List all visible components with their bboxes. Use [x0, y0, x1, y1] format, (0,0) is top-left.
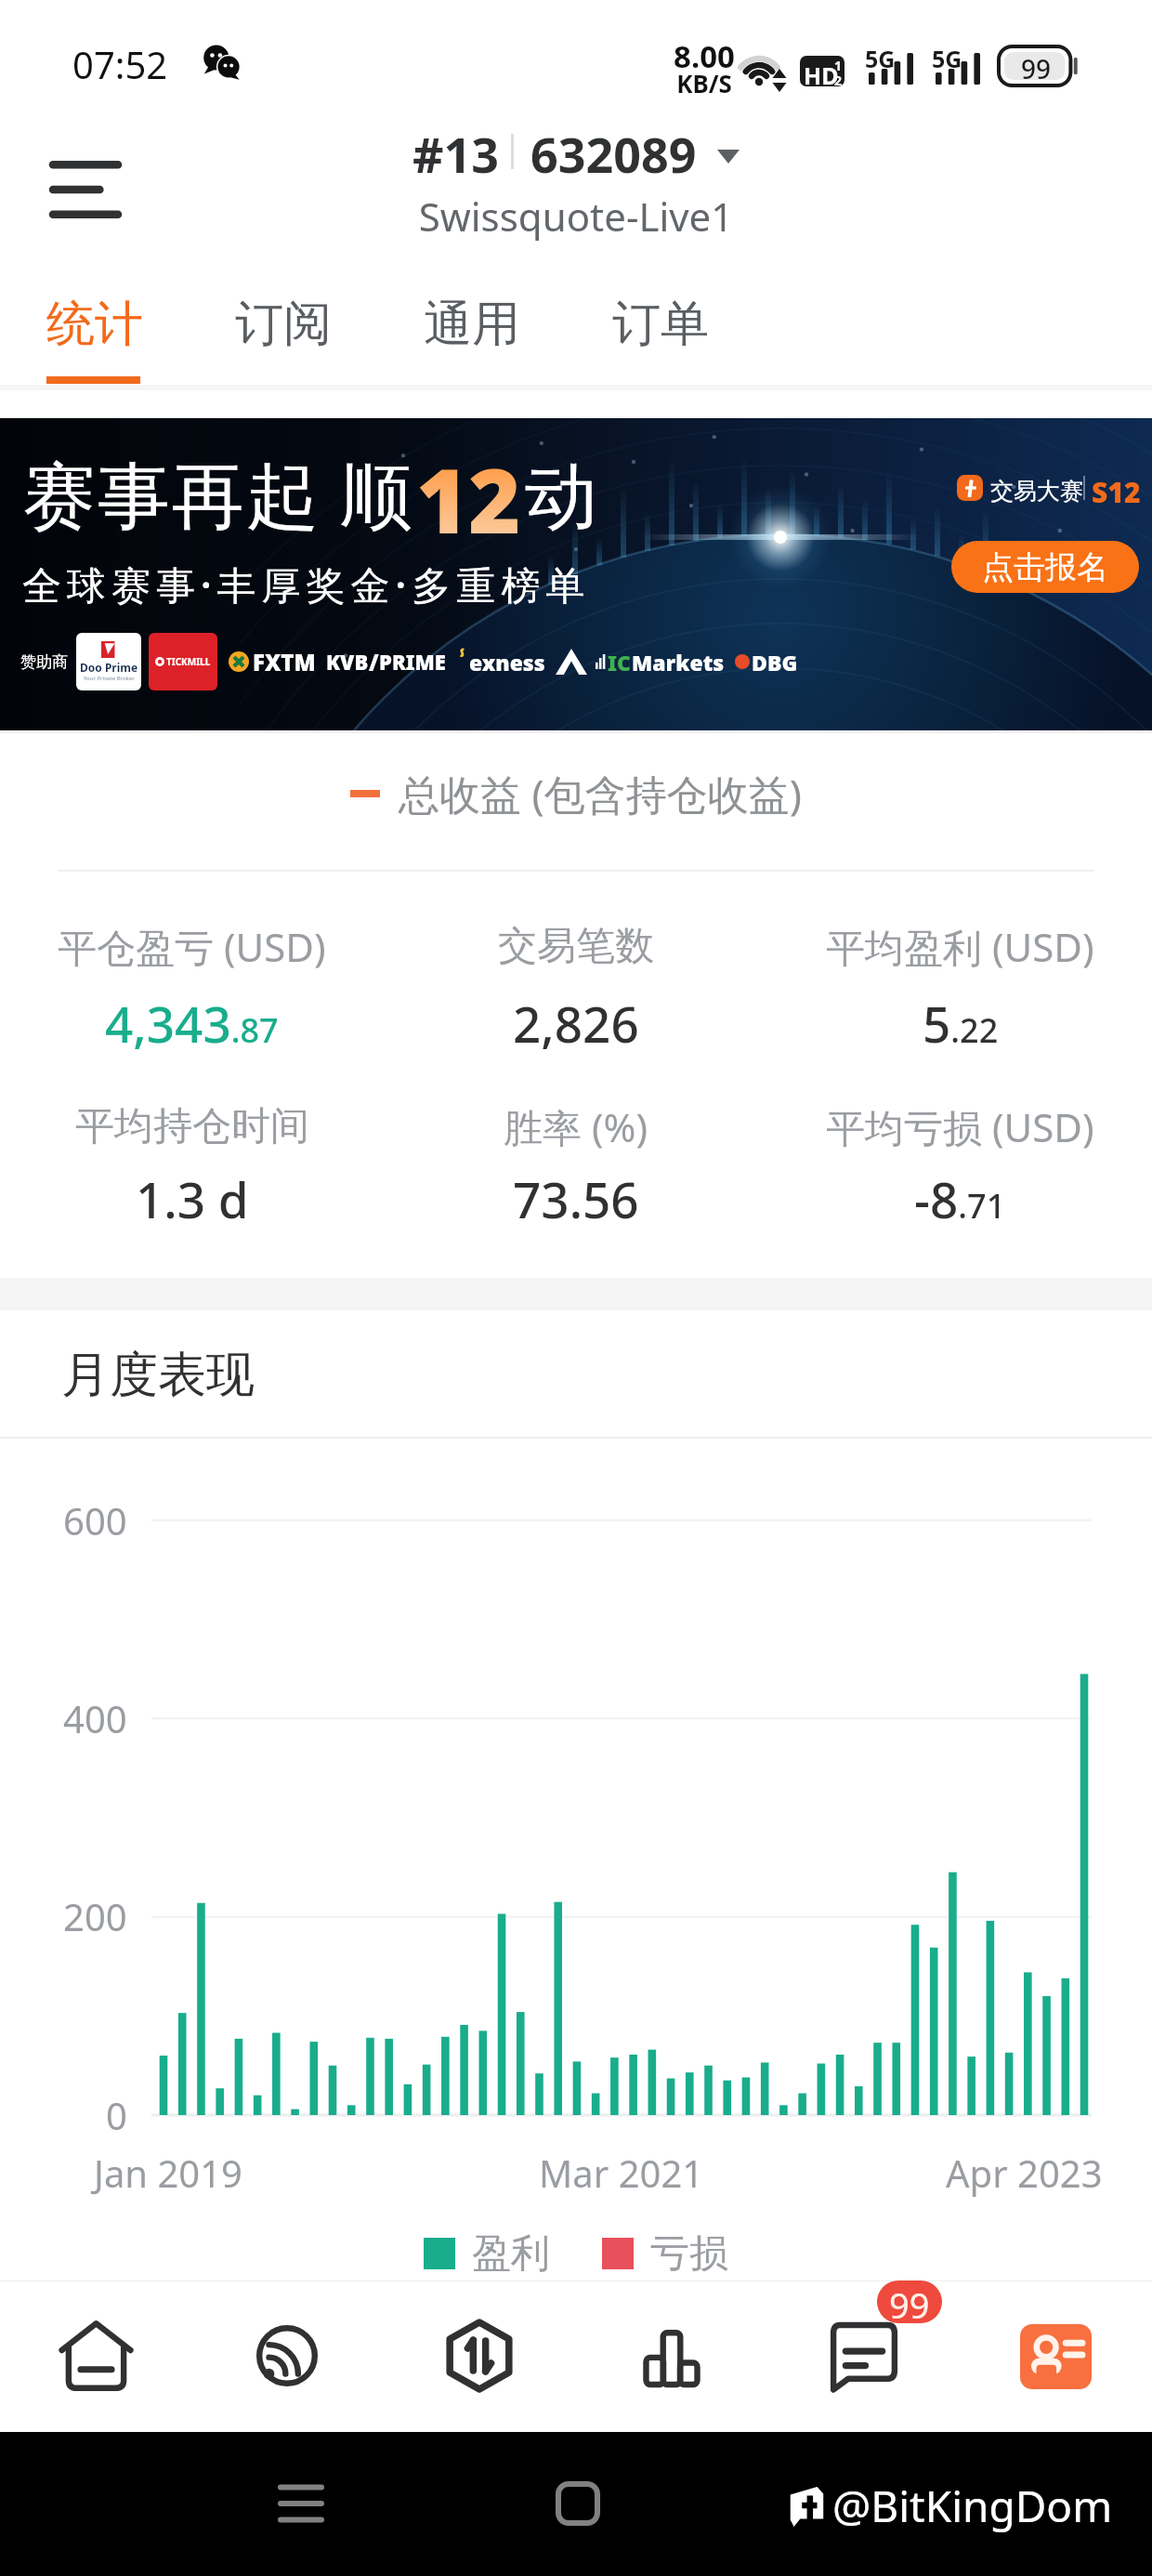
- button[interactable]: Recents: [243, 2448, 359, 2559]
- staticText: 平均亏损 (USD): [826, 1100, 1094, 1153]
- staticText: Doo Prime: [80, 660, 138, 675]
- staticText: TICKMILL: [166, 655, 211, 668]
- button[interactable]: Profile: [960, 2281, 1152, 2432]
- staticText: S12: [1092, 473, 1141, 510]
- staticText: 赞助商: [20, 652, 68, 672]
- staticText: HD: [804, 59, 839, 90]
- button[interactable]: 赛事再起: [0, 418, 1152, 730]
- staticText: 交易大赛: [990, 477, 1083, 506]
- staticText: 平仓盈亏 (USD): [58, 920, 326, 973]
- staticText: 600: [63, 1495, 127, 1545]
- staticText: @BitKingDom: [832, 2477, 1113, 2535]
- button[interactable]: 点击报名: [951, 541, 1139, 593]
- staticText: 4,343.87: [105, 990, 279, 1057]
- button[interactable]: 通用: [378, 269, 566, 385]
- staticText: 通用: [424, 294, 520, 355]
- staticText: DBG: [752, 648, 798, 677]
- staticText: 99: [996, 51, 1076, 86]
- staticText: 平均盈利 (USD): [826, 920, 1094, 973]
- staticText: 亏损: [650, 2229, 728, 2279]
- staticText: -8.71: [914, 1165, 1006, 1232]
- button[interactable]: Statistics: [575, 2281, 767, 2432]
- staticText: 交易笔数: [498, 922, 654, 971]
- staticText: 12: [416, 438, 521, 559]
- staticText: exness: [469, 648, 545, 677]
- staticText: 1.3 d: [136, 1165, 249, 1232]
- staticText: 0: [106, 2090, 127, 2140]
- staticText: ⸯ: [456, 648, 469, 676]
- staticText: KB/S: [664, 67, 744, 99]
- button[interactable]: 统计: [1, 269, 189, 385]
- staticText: 200: [63, 1891, 127, 1941]
- staticText: 5G: [932, 43, 962, 74]
- staticText: FXTM: [253, 647, 316, 677]
- button[interactable]: Signals: [191, 2281, 383, 2432]
- staticText: PRIME: [379, 648, 446, 676]
- staticText: 胜率 (%): [504, 1100, 648, 1153]
- staticText: 全球赛事·丰厚奖金·多重榜单: [22, 558, 591, 611]
- staticText: Your Private Broker: [84, 675, 135, 682]
- button[interactable]: Home: [520, 2448, 635, 2559]
- staticText: 632089: [530, 121, 697, 182]
- staticText: 赛事再起: [22, 452, 320, 543]
- staticText: 07:52: [72, 39, 168, 89]
- staticText: 总收益 (包含持仓收益): [399, 766, 802, 821]
- staticText: 订阅: [235, 294, 332, 355]
- button[interactable]: Trade: [383, 2281, 575, 2432]
- staticText: KVB: [326, 648, 369, 676]
- staticText: 73.56: [513, 1165, 639, 1232]
- staticText: 5G: [865, 43, 896, 74]
- staticText: 8.00: [664, 35, 744, 77]
- staticText: 月度表现: [61, 1345, 255, 1406]
- button[interactable]: 订单: [567, 269, 754, 385]
- staticText: 2,826: [513, 990, 639, 1057]
- staticText: 99: [889, 2280, 930, 2323]
- staticText: Markets: [632, 648, 725, 677]
- staticText: 点击报名: [982, 547, 1108, 587]
- staticText: Swissquote-Live1: [0, 190, 1152, 243]
- staticText: 5.22: [923, 990, 999, 1057]
- staticText: Jan 2019: [94, 2148, 242, 2198]
- staticText: 平均持仓时间: [75, 1102, 309, 1151]
- button[interactable]: Messages: [767, 2281, 960, 2432]
- staticText: /: [369, 647, 379, 677]
- staticText: 盈利: [472, 2229, 550, 2279]
- staticText: #13: [412, 121, 500, 182]
- staticText: 顺: [340, 452, 412, 543]
- staticText: 1: [834, 57, 843, 74]
- staticText: 动: [525, 452, 597, 543]
- staticText: IC: [608, 648, 632, 677]
- staticText: 400: [63, 1693, 127, 1743]
- staticText: 订单: [612, 294, 709, 355]
- staticText: 2: [834, 72, 843, 89]
- button[interactable]: Home: [0, 2281, 191, 2432]
- staticText: Apr 2023: [946, 2148, 1103, 2198]
- staticText: 统计: [46, 294, 143, 355]
- staticText: Mar 2021: [539, 2148, 704, 2198]
- button[interactable]: Menu: [20, 125, 151, 255]
- button[interactable]: 订阅: [190, 269, 377, 385]
